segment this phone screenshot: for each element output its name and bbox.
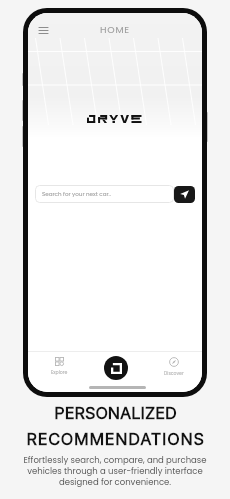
button[interactable]: Discover [157, 354, 191, 379]
staticText: PERSONALIZED [54, 403, 177, 423]
staticText: Effortlessly search, compare, and purcha… [0, 454, 230, 488]
button[interactable]: Explore [44, 354, 75, 378]
staticText: HOME [100, 23, 130, 36]
staticText: Discover [164, 370, 184, 376]
button[interactable]: Search [174, 186, 195, 203]
staticText: Explore [51, 369, 68, 375]
button[interactable]: Search for your next car.. [35, 185, 174, 203]
staticText: Search for your next car.. [42, 190, 111, 198]
button[interactable]: Menu [34, 22, 53, 38]
button[interactable]: Dryve home [104, 356, 128, 380]
staticText: RECOMMENDATIONS [26, 429, 205, 449]
